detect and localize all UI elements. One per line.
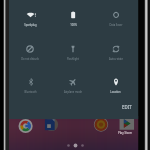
- staticText: Play Store: [118, 131, 132, 135]
- button[interactable]: Do not disturb: [9, 33, 51, 66]
- staticText: Location: [110, 90, 121, 94]
- staticText: Do not disturb: [21, 57, 39, 61]
- button[interactable]: Sparkplug: [9, 0, 51, 33]
- staticText: Auto-rotate: [109, 57, 123, 61]
- button[interactable]: EDIT: [119, 102, 135, 112]
- staticText: EDIT: [122, 104, 132, 110]
- button[interactable]: Data Saver: [94, 0, 137, 33]
- staticText: 100%: [70, 23, 77, 27]
- button[interactable]: Flashlight: [51, 33, 94, 66]
- staticText: Data Saver: [109, 23, 123, 27]
- button[interactable]: 100%: [51, 0, 94, 33]
- button[interactable]: Auto-rotate: [94, 33, 137, 66]
- button[interactable]: Airplane mode: [51, 66, 94, 99]
- button[interactable]: Bluetooth: [9, 66, 51, 99]
- button[interactable]: Location: [94, 66, 137, 99]
- button[interactable]: Play Store: [118, 131, 132, 135]
- staticText: Sparkplug: [24, 23, 37, 27]
- staticText: Flashlight: [67, 57, 79, 61]
- staticText: Bluetooth: [24, 90, 37, 94]
- staticText: Airplane mode: [64, 90, 82, 94]
